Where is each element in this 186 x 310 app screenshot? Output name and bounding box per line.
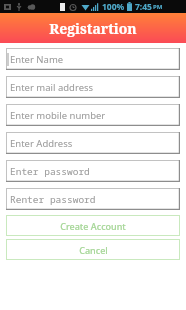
staticText: PM [153,3,163,11]
staticText: Registartion [49,19,137,38]
staticText: Cancel [79,244,108,256]
staticText: Enter password [10,165,90,178]
staticText: Enter mail address [10,81,94,94]
staticText: Enter Name [10,53,64,66]
staticText: Enter mobile number [10,109,106,122]
button[interactable]: Create Account [6,215,180,236]
staticText: Renter password [10,193,96,206]
button[interactable]: Cancel [6,239,180,260]
button[interactable]: Enter Name [6,48,180,70]
staticText: Enter Address [10,137,73,150]
staticText: Create Account [60,220,126,232]
button[interactable]: Enter mail address [6,76,180,98]
staticText: 100% [102,1,125,13]
staticText: 7:45 [135,1,152,13]
button[interactable]: Enter Address [6,132,180,154]
button[interactable]: Enter mobile number [6,104,180,126]
button[interactable]: Enter password [6,160,180,182]
button[interactable]: Renter password [6,188,180,210]
